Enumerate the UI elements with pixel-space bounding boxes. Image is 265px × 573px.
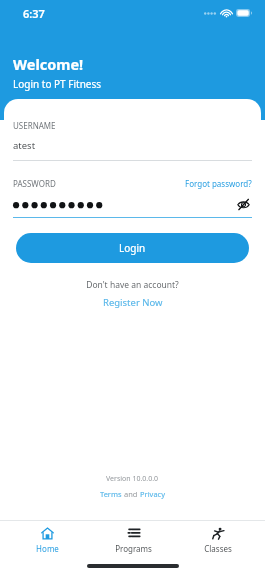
button[interactable]: Login (16, 233, 249, 263)
button[interactable]: Classes (180, 527, 256, 554)
staticText: Classes (204, 543, 232, 554)
staticText: Login (119, 241, 146, 255)
button[interactable]: Home (9, 527, 85, 554)
staticText: Register Now (103, 296, 163, 309)
staticText: PASSWORD (13, 178, 185, 189)
button[interactable]: Register Now (103, 296, 163, 309)
staticText: Programs (115, 543, 152, 554)
staticText: Login to PT Fitness (13, 77, 102, 91)
staticText: Version 10.0.0.0 (106, 474, 159, 484)
staticText: Don't have an account? (86, 279, 179, 291)
staticText: Welcome! (13, 54, 84, 74)
button[interactable]: Forgot password? (185, 178, 252, 189)
staticText: USERNAME (13, 120, 56, 131)
button[interactable]: Programs (95, 527, 171, 554)
staticText: Forgot password? (185, 178, 252, 189)
staticText: Home (36, 543, 59, 554)
button[interactable]: Show password (234, 195, 252, 213)
button[interactable]: Terms (100, 489, 122, 499)
staticText: and (122, 489, 140, 499)
button[interactable]: Privacy (140, 489, 166, 499)
staticText: 6:37 (23, 6, 45, 21)
staticText: atest (13, 139, 36, 152)
